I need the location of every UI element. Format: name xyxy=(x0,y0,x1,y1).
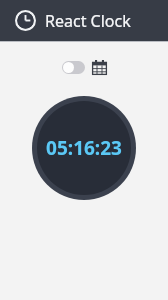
button[interactable]: Clock face xyxy=(32,96,136,200)
button[interactable]: Toggle 24 hour xyxy=(62,61,85,74)
button[interactable]: Calendar xyxy=(92,60,107,75)
other: Clock xyxy=(15,10,36,31)
staticText: React Clock xyxy=(45,10,131,32)
staticText: 05:16:23 xyxy=(46,135,122,161)
